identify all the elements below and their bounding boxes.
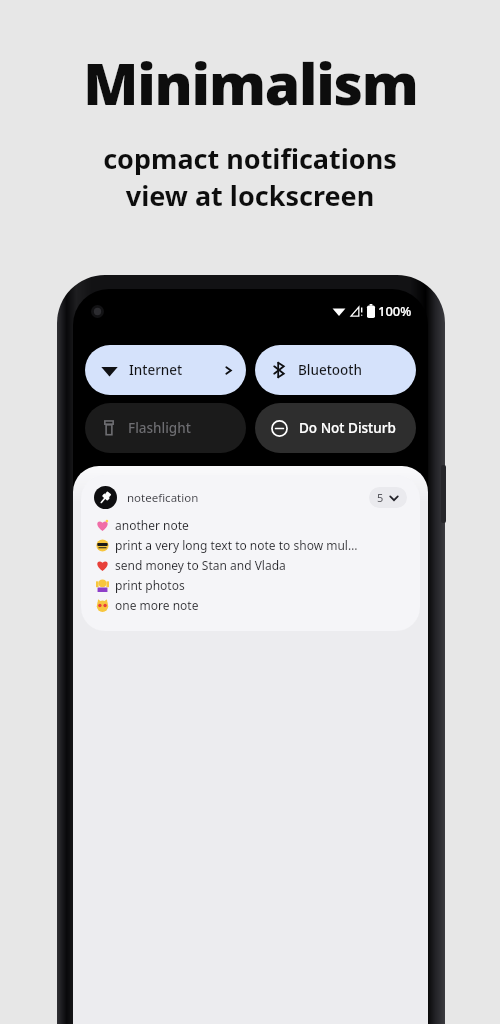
staticText: noteefication [127,490,199,506]
staticText: 100% [378,302,412,320]
button[interactable]: Internet [85,345,246,395]
button[interactable]: print a very long text to note to show m… [94,535,407,555]
button[interactable]: Flashlight [85,403,246,453]
button[interactable]: another note [94,515,407,535]
button[interactable]: one more note [94,595,407,615]
button[interactable]: Do Not Disturb [255,403,416,453]
button[interactable]: noteefication [81,475,420,631]
staticText: one more note [115,597,199,613]
staticText: Do Not Disturb [299,419,396,437]
staticText: copmact notifications view at lockscreen [103,140,397,214]
staticText: print photos [115,577,185,593]
button[interactable]: Bluetooth [255,345,416,395]
staticText: another note [115,517,189,533]
button[interactable]: Expand 5 notifications [369,487,407,508]
staticText: Bluetooth [298,361,362,379]
staticText: Internet [129,361,183,379]
button[interactable]: send money to Stan and Vlada [94,555,407,575]
staticText: 5 [377,490,384,505]
staticText: Flashlight [128,419,191,437]
staticText: print a very long text to note to show m… [115,537,358,553]
staticText: send money to Stan and Vlada [115,557,286,573]
button[interactable]: print photos [94,575,407,595]
staticText: Minimalism [83,44,418,122]
